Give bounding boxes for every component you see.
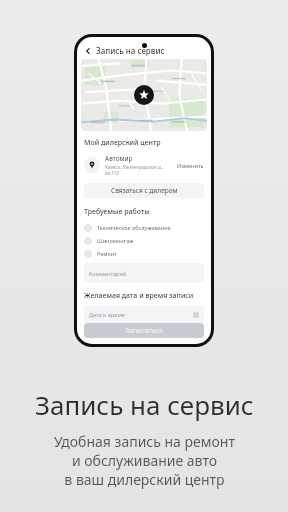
- button[interactable]: Комментарий: [84, 263, 204, 283]
- staticText: Ремонт: [97, 250, 117, 257]
- staticText: Киевск, Ленинградское ш., вл.115: [105, 164, 177, 176]
- staticText: Удобная запись на ремонт и обслуживание …: [54, 432, 235, 489]
- button[interactable]: Изменить: [177, 162, 204, 169]
- staticText: Дата и время: [89, 311, 125, 318]
- staticText: Желаемая дата и время записи: [84, 291, 194, 301]
- staticText: Связаться с дилером: [111, 186, 178, 195]
- staticText: Изменить: [177, 162, 204, 169]
- staticText: Техническое обслуживание: [97, 224, 171, 231]
- staticText: Мой дилерский центр: [84, 138, 161, 148]
- staticText: Записаться: [125, 326, 164, 336]
- staticText: Комментарий: [89, 270, 127, 277]
- button[interactable]: Map: [81, 59, 207, 131]
- staticText: Шиномонтаж: [97, 237, 134, 244]
- button[interactable]: Связаться с дилером: [84, 183, 204, 198]
- button[interactable]: Back: [83, 46, 93, 56]
- button[interactable]: Автомир: [84, 154, 204, 176]
- button[interactable]: Техническое обслуживание: [84, 221, 204, 234]
- staticText: Запись на сервис: [96, 45, 165, 56]
- button[interactable]: Записаться: [84, 323, 204, 338]
- button[interactable]: Шиномонтаж: [84, 234, 204, 247]
- staticText: Требуемые работы: [84, 207, 150, 217]
- button[interactable]: Дата и время: [84, 306, 204, 323]
- button[interactable]: Ремонт: [84, 247, 204, 260]
- staticText: Запись на сервис: [35, 387, 254, 422]
- staticText: Автомир: [105, 154, 133, 163]
